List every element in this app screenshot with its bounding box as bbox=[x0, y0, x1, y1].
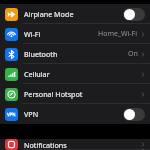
button[interactable]: Airplane Mode toggle bbox=[123, 8, 145, 21]
button[interactable]: VPN toggle bbox=[123, 108, 145, 121]
staticText: VPN bbox=[24, 109, 39, 119]
staticText: Airplane Mode bbox=[24, 9, 74, 19]
button[interactable]: Cellular bbox=[0, 64, 150, 84]
staticText: Wi-Fi bbox=[24, 29, 41, 39]
button[interactable]: Wi-Fi bbox=[0, 24, 150, 44]
button[interactable]: Notifications bbox=[0, 139, 150, 150]
staticText: Bluetooth bbox=[24, 49, 58, 59]
staticText: Cellular bbox=[24, 69, 50, 79]
button[interactable]: Bluetooth bbox=[0, 44, 150, 64]
staticText: Personal Hotspot bbox=[24, 89, 83, 99]
button[interactable]: VPN bbox=[0, 104, 150, 124]
button[interactable]: Airplane Mode bbox=[0, 4, 150, 24]
staticText: Home_Wi-Fi bbox=[98, 29, 138, 39]
button[interactable]: Personal Hotspot bbox=[0, 84, 150, 104]
staticText: On bbox=[128, 49, 138, 59]
staticText: Notifications bbox=[24, 140, 67, 150]
